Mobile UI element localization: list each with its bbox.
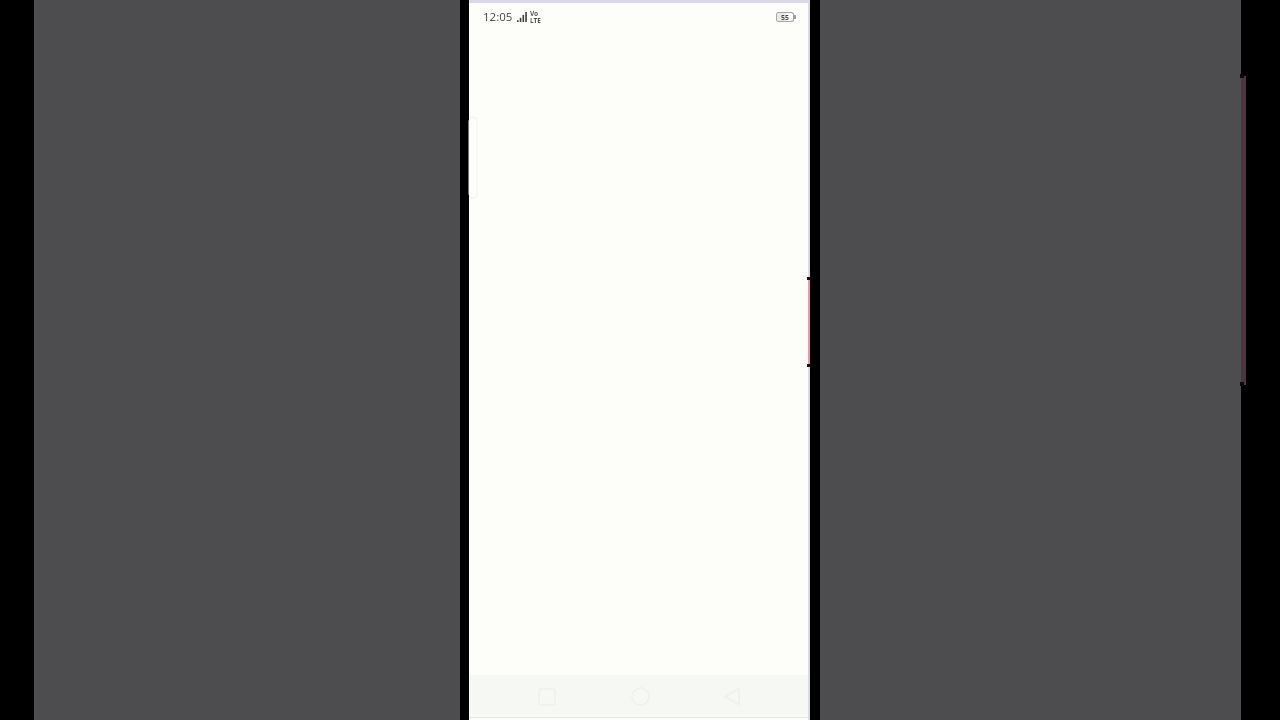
button[interactable]: App content (469, 31, 810, 675)
staticText: 12:05 (483, 9, 513, 25)
staticText: 55 (781, 13, 790, 21)
staticText: Vo (530, 9, 539, 18)
staticText: LTE (530, 16, 541, 25)
